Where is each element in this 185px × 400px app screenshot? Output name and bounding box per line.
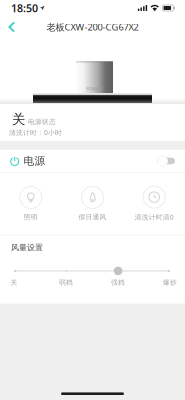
staticText: 18:50 [11, 1, 38, 15]
button[interactable]: 假日通风 [62, 184, 123, 223]
button[interactable]: 照明 [0, 184, 62, 223]
staticText: 电源状态 [28, 118, 56, 126]
staticText: 假日通风 [78, 213, 106, 221]
staticText: 弱档 [59, 278, 73, 287]
staticText: 照明 [24, 213, 38, 221]
staticText: 老板CXW-200-CG67X2 [46, 21, 138, 33]
staticText: 关 [10, 278, 17, 287]
staticText: 电源 [23, 154, 45, 167]
button[interactable]: Back [0, 17, 19, 37]
button[interactable]: 清洗计时清0 [123, 184, 185, 223]
staticText: 爆炒 [163, 278, 177, 287]
staticText: 清洗计时：0小时 [9, 128, 62, 137]
staticText: 清洗计时清0 [135, 213, 174, 221]
staticText: 关 [12, 111, 25, 127]
staticText: 强档 [111, 278, 125, 287]
staticText: ROBAM [86, 86, 102, 91]
staticText: 风量设置 [11, 243, 43, 252]
button[interactable]: 电源 [0, 150, 185, 172]
